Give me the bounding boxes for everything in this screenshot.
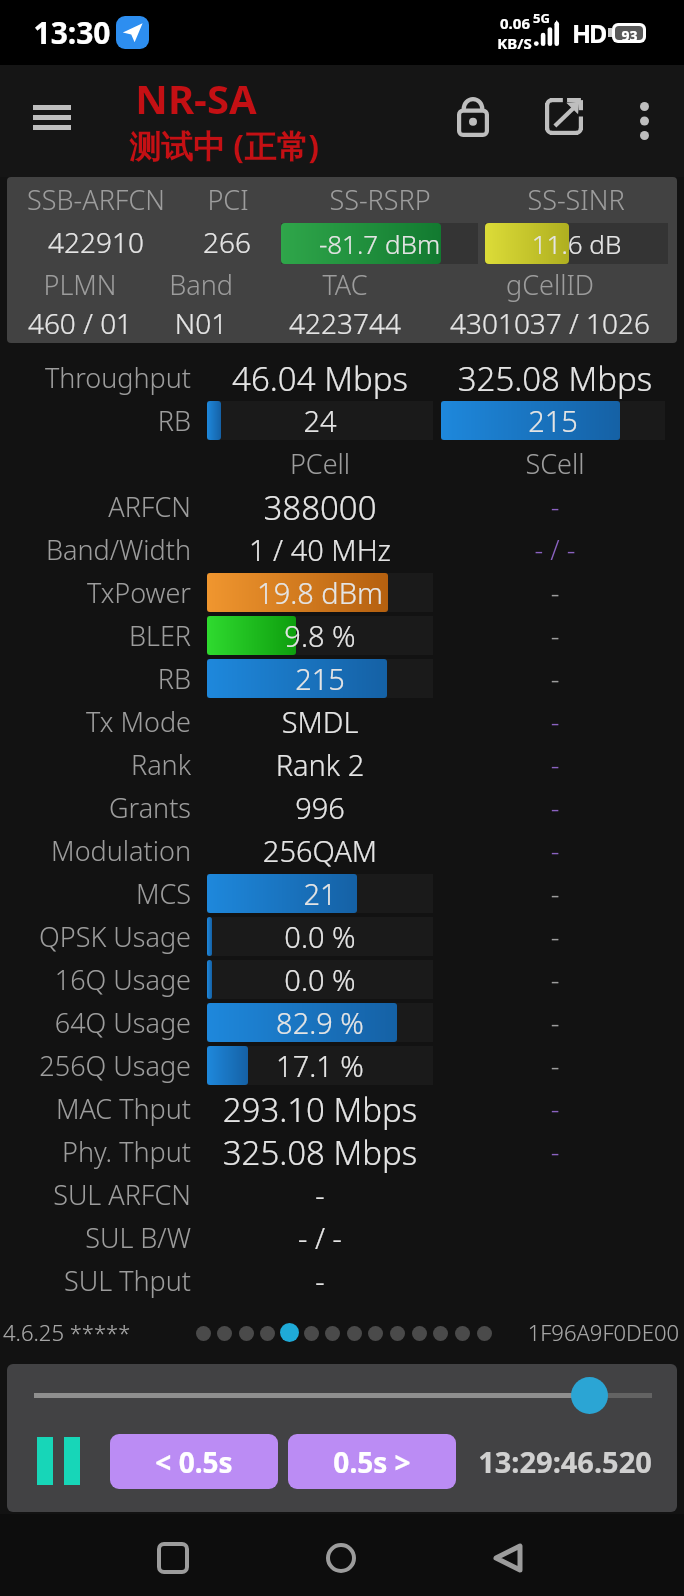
staticText: BLER — [0, 617, 191, 654]
staticText: - — [495, 832, 615, 869]
button[interactable]: Home — [301, 1514, 381, 1596]
staticText: TAC — [195, 266, 495, 303]
staticText: 293.10 Mbps — [207, 1087, 433, 1130]
staticText: < 0.5s — [155, 1443, 233, 1481]
staticText: 测试中 (正常) — [74, 124, 374, 168]
staticText: 21 — [207, 874, 433, 913]
button[interactable]: More options — [612, 65, 676, 177]
staticText: 388000 — [207, 485, 433, 528]
staticText: MAC Thput — [0, 1090, 191, 1127]
staticText: SS-RSRP — [230, 181, 530, 218]
staticText: RB — [0, 402, 191, 439]
staticText: Phy. Thput — [0, 1133, 191, 1170]
button[interactable]: Share — [528, 60, 600, 172]
staticText: - — [207, 1261, 433, 1300]
staticText: HD — [572, 16, 632, 50]
staticText: 82.9 % — [207, 1003, 433, 1042]
staticText: 0.06 — [500, 13, 530, 33]
staticText: - — [495, 660, 615, 697]
staticText: QPSK Usage — [0, 918, 191, 955]
staticText: TxPower — [0, 574, 191, 611]
button[interactable]: 0.5s > — [288, 1434, 456, 1489]
staticText: 460 / 01 — [7, 304, 230, 342]
staticText: 5G — [533, 9, 563, 27]
staticText: SUL ARFCN — [0, 1176, 191, 1213]
staticText: 325.08 Mbps — [442, 356, 668, 399]
staticText: - — [495, 746, 615, 783]
staticText: SCell — [475, 445, 635, 482]
button[interactable]: Lock — [437, 61, 509, 173]
staticText: - — [495, 875, 615, 912]
staticText: Band — [51, 266, 351, 303]
staticText: 4223744 — [195, 304, 495, 342]
staticText: 9.8 % — [207, 616, 433, 655]
staticText: ARFCN — [0, 488, 191, 525]
staticText: Grants — [0, 789, 191, 826]
staticText: 266 — [77, 223, 377, 261]
button[interactable]: Recents — [133, 1514, 213, 1596]
staticText: PLMN — [7, 266, 230, 303]
staticText: - — [495, 1004, 615, 1041]
staticText: 93 — [621, 26, 638, 40]
staticText: - — [495, 617, 615, 654]
staticText: 16Q Usage — [0, 961, 191, 998]
staticText: 17.1 % — [207, 1046, 433, 1085]
staticText: 13:30 — [0, 12, 222, 53]
staticText: Rank — [0, 746, 191, 783]
staticText: KB/S — [497, 33, 532, 53]
staticText: - — [495, 918, 615, 955]
staticText: gCellID — [400, 266, 677, 303]
staticText: Rank 2 — [207, 745, 433, 784]
staticText: Modulation — [0, 832, 191, 869]
staticText: PCell — [207, 445, 433, 482]
staticText: 1 / 40 MHz — [207, 530, 433, 569]
staticText: PCI — [78, 181, 378, 218]
staticText: Tx Mode — [0, 703, 191, 740]
staticText: 996 — [207, 788, 433, 827]
staticText: - — [495, 574, 615, 611]
staticText: RB — [0, 660, 191, 697]
staticText: - — [495, 703, 615, 740]
staticText: - — [495, 488, 615, 525]
button[interactable]: < 0.5s — [110, 1434, 278, 1489]
staticText: 422910 — [7, 223, 246, 261]
staticText: - — [495, 1090, 615, 1127]
staticText: 24 — [207, 401, 433, 440]
staticText: - — [495, 961, 615, 998]
staticText: Throughput — [0, 359, 191, 396]
staticText: 215 — [207, 659, 433, 698]
button[interactable]: Pause — [37, 1437, 80, 1485]
staticText: - / - — [495, 531, 615, 568]
staticText: 11.6 dB — [485, 226, 668, 261]
staticText: 215 — [441, 401, 665, 440]
staticText: - / - — [207, 1218, 433, 1257]
staticText: SMDL — [207, 702, 433, 741]
staticText: SSB-ARFCN — [7, 181, 246, 218]
staticText: -81.7 dBm — [281, 226, 478, 261]
staticText: 13:29:46.520 — [470, 1442, 660, 1481]
staticText: Band/Width — [0, 531, 191, 568]
staticText: 256QAM — [207, 831, 433, 870]
staticText: SUL B/W — [0, 1219, 191, 1256]
staticText: 19.8 dBm — [207, 573, 433, 612]
staticText: - — [495, 1047, 615, 1084]
staticText: - — [207, 1175, 433, 1214]
button[interactable]: Menu — [14, 61, 90, 173]
staticText: 0.0 % — [207, 917, 433, 956]
staticText: NR-SA — [46, 71, 346, 125]
staticText: MCS — [0, 875, 191, 912]
staticText: SUL Thput — [0, 1262, 191, 1299]
staticText: 1F96A9F0DE00 — [527, 1317, 679, 1347]
button[interactable]: Back — [468, 1514, 548, 1596]
staticText: 256Q Usage — [0, 1047, 191, 1084]
staticText: 0.5s > — [333, 1443, 411, 1481]
staticText: N01 — [51, 304, 351, 342]
staticText: 64Q Usage — [0, 1004, 191, 1041]
staticText: SS-SINR — [426, 181, 677, 218]
staticText: - — [495, 1133, 615, 1170]
staticText: 46.04 Mbps — [207, 356, 433, 399]
staticText: 325.08 Mbps — [207, 1130, 433, 1173]
staticText: 4301037 / 1026 — [400, 304, 677, 342]
staticText: 0.0 % — [207, 960, 433, 999]
staticText: - — [495, 789, 615, 826]
